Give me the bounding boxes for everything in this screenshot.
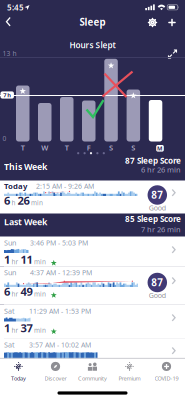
staticText: 6: [4, 284, 10, 299]
staticText: 5:45: [7, 2, 24, 13]
button[interactable]: Sun: [0, 236, 185, 266]
staticText: 4:37 AM - 12:39 PM: [30, 268, 92, 277]
staticText: T: [65, 142, 69, 153]
staticText: 1: [4, 252, 10, 267]
staticText: 87: [151, 276, 163, 289]
button[interactable]: Expand chart: [165, 47, 179, 61]
button[interactable]: Sat: [0, 304, 185, 339]
staticText: Today: [4, 181, 27, 191]
button[interactable]: Community: [74, 358, 111, 384]
staticText: W: [41, 142, 48, 153]
staticText: 87 Sleep Score: [125, 155, 181, 166]
staticText: 11:29 AM - 1:53 PM: [29, 306, 91, 316]
button[interactable]: Back: [2, 13, 15, 30]
staticText: Good: [149, 290, 166, 300]
staticText: min: [34, 257, 46, 266]
staticText: Discover: [44, 374, 66, 382]
staticText: COVID-19: [154, 374, 178, 382]
staticText: hr: [11, 257, 18, 266]
staticText: Premium: [118, 374, 140, 382]
staticText: 2:15 AM - 9:26 AM: [36, 181, 94, 191]
staticText: F: [87, 142, 91, 153]
staticText: Sun: [4, 238, 16, 248]
staticText: 26: [17, 193, 29, 208]
staticText: 85 Sleep Score: [125, 213, 181, 224]
staticText: M: [157, 144, 163, 152]
staticText: 3:46 PM - 5:03 PM: [30, 238, 88, 247]
button[interactable]: Today: [0, 180, 185, 213]
button[interactable]: Today: [0, 358, 37, 384]
staticText: hr: [11, 326, 18, 335]
staticText: Last Week: [4, 216, 47, 228]
staticText: Hours Slept: [69, 39, 115, 51]
staticText: Community: [78, 374, 107, 382]
staticText: 3:57 AM - 10:02 AM: [29, 340, 91, 349]
staticText: 49: [20, 284, 32, 299]
staticText: 6 hr 26 min: [141, 164, 181, 175]
staticText: min: [34, 326, 46, 335]
staticText: hr: [11, 290, 18, 298]
staticText: 7 h: [3, 91, 11, 99]
button[interactable]: Discover: [37, 358, 74, 384]
staticText: 1: [4, 320, 10, 335]
staticText: Sun: [4, 268, 16, 277]
staticText: 87: [151, 188, 163, 202]
button[interactable]: COVID-19: [148, 358, 185, 384]
button[interactable]: Premium: [111, 358, 148, 384]
staticText: Sat: [4, 306, 15, 316]
staticText: T: [21, 142, 25, 153]
staticText: Good: [149, 203, 166, 212]
staticText: h: [11, 198, 15, 207]
button[interactable]: Settings: [145, 15, 160, 30]
button[interactable]: Add sleep session: [164, 15, 180, 30]
staticText: Sat: [4, 340, 15, 350]
staticText: 7 hr 26 min: [141, 224, 181, 234]
staticText: 6: [4, 193, 10, 208]
staticText: Sleep: [79, 15, 105, 29]
staticText: S: [131, 142, 135, 153]
staticText: 0: [2, 134, 6, 143]
staticText: Today: [11, 374, 26, 382]
staticText: 11: [20, 252, 32, 267]
staticText: min: [34, 290, 46, 298]
staticText: 13 h: [2, 49, 16, 58]
button[interactable]: Sun: [0, 266, 185, 304]
staticText: S: [109, 142, 113, 153]
staticText: min: [31, 198, 43, 207]
button[interactable]: Sat: [0, 339, 185, 358]
staticText: 37: [20, 320, 32, 335]
staticText: This Week: [4, 160, 47, 172]
